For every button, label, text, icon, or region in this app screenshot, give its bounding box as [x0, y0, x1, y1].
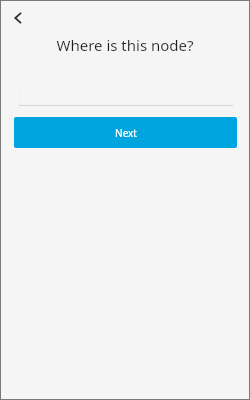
button[interactable]: [19, 88, 233, 106]
button[interactable]: Next: [14, 117, 237, 148]
button[interactable]: Back: [5, 5, 31, 31]
staticText: Where is this node?: [56, 35, 194, 55]
staticText: Next: [115, 126, 137, 140]
